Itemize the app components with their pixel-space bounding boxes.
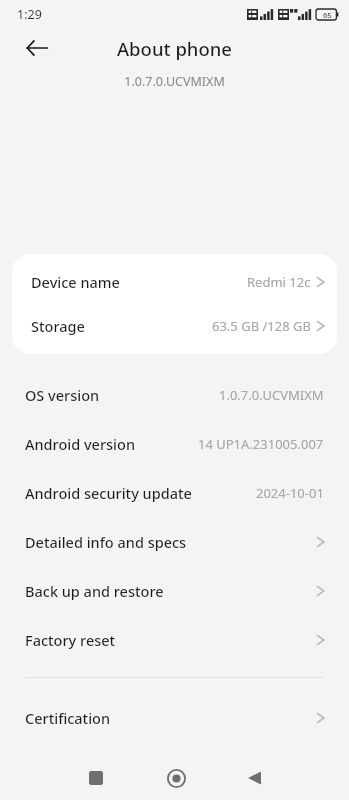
button[interactable]: Back [232, 756, 276, 800]
button[interactable]: Android version [0, 419, 349, 468]
button[interactable]: Recent apps [74, 756, 118, 800]
button[interactable]: Detailed info and specs [0, 517, 349, 566]
button[interactable]: Android security update [0, 468, 349, 517]
staticText: 2024-10-01 [256, 484, 324, 502]
staticText: 1.0.7.0.UCVMIXM [219, 386, 324, 404]
staticText: 14 UP1A.231005.007 [198, 435, 324, 453]
staticText: Android version [25, 434, 135, 454]
staticText: Device name [31, 272, 120, 292]
staticText: Factory reset [25, 630, 116, 650]
staticText: Detailed info and specs [25, 532, 187, 552]
staticText: Certification [25, 708, 111, 728]
button[interactable]: Device name [12, 260, 337, 304]
button[interactable]: Back up and restore [0, 566, 349, 615]
staticText: 63.5 GB /128 GB [212, 317, 311, 335]
button[interactable]: OS version [0, 370, 349, 419]
staticText: Storage [31, 316, 85, 336]
button[interactable]: Storage [12, 304, 337, 348]
button[interactable]: Back [18, 29, 56, 67]
staticText: Back up and restore [25, 581, 164, 601]
button[interactable]: Certification [0, 693, 349, 742]
staticText: Redmi 12c [247, 273, 311, 291]
staticText: 1:29 [17, 6, 42, 23]
staticText: Android security update [25, 483, 192, 503]
staticText: 1.0.7.0.UCVMIXM [124, 73, 225, 90]
button[interactable]: Home [154, 756, 198, 800]
staticText: OS version [25, 385, 100, 405]
button[interactable]: Factory reset [0, 615, 349, 664]
staticText: 65 [323, 10, 332, 20]
staticText: About phone [117, 36, 232, 61]
